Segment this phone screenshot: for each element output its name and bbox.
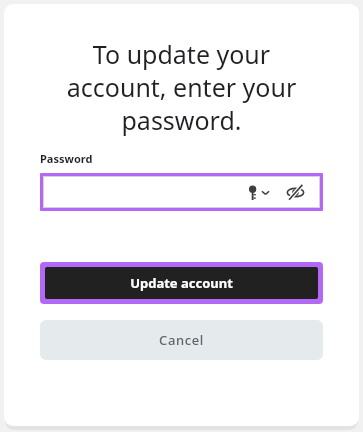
staticText: To update your account, enter your passw… — [22, 37, 341, 137]
button[interactable]: Hide password — [283, 180, 307, 204]
button[interactable]: Choose saved password — [43, 176, 320, 208]
staticText: Password — [40, 151, 93, 166]
button[interactable]: Choose saved password — [246, 185, 272, 200]
button[interactable]: Update account — [45, 267, 318, 299]
staticText: Cancel — [159, 331, 204, 349]
staticText: Update account — [130, 274, 233, 292]
button[interactable]: Cancel — [40, 320, 323, 360]
